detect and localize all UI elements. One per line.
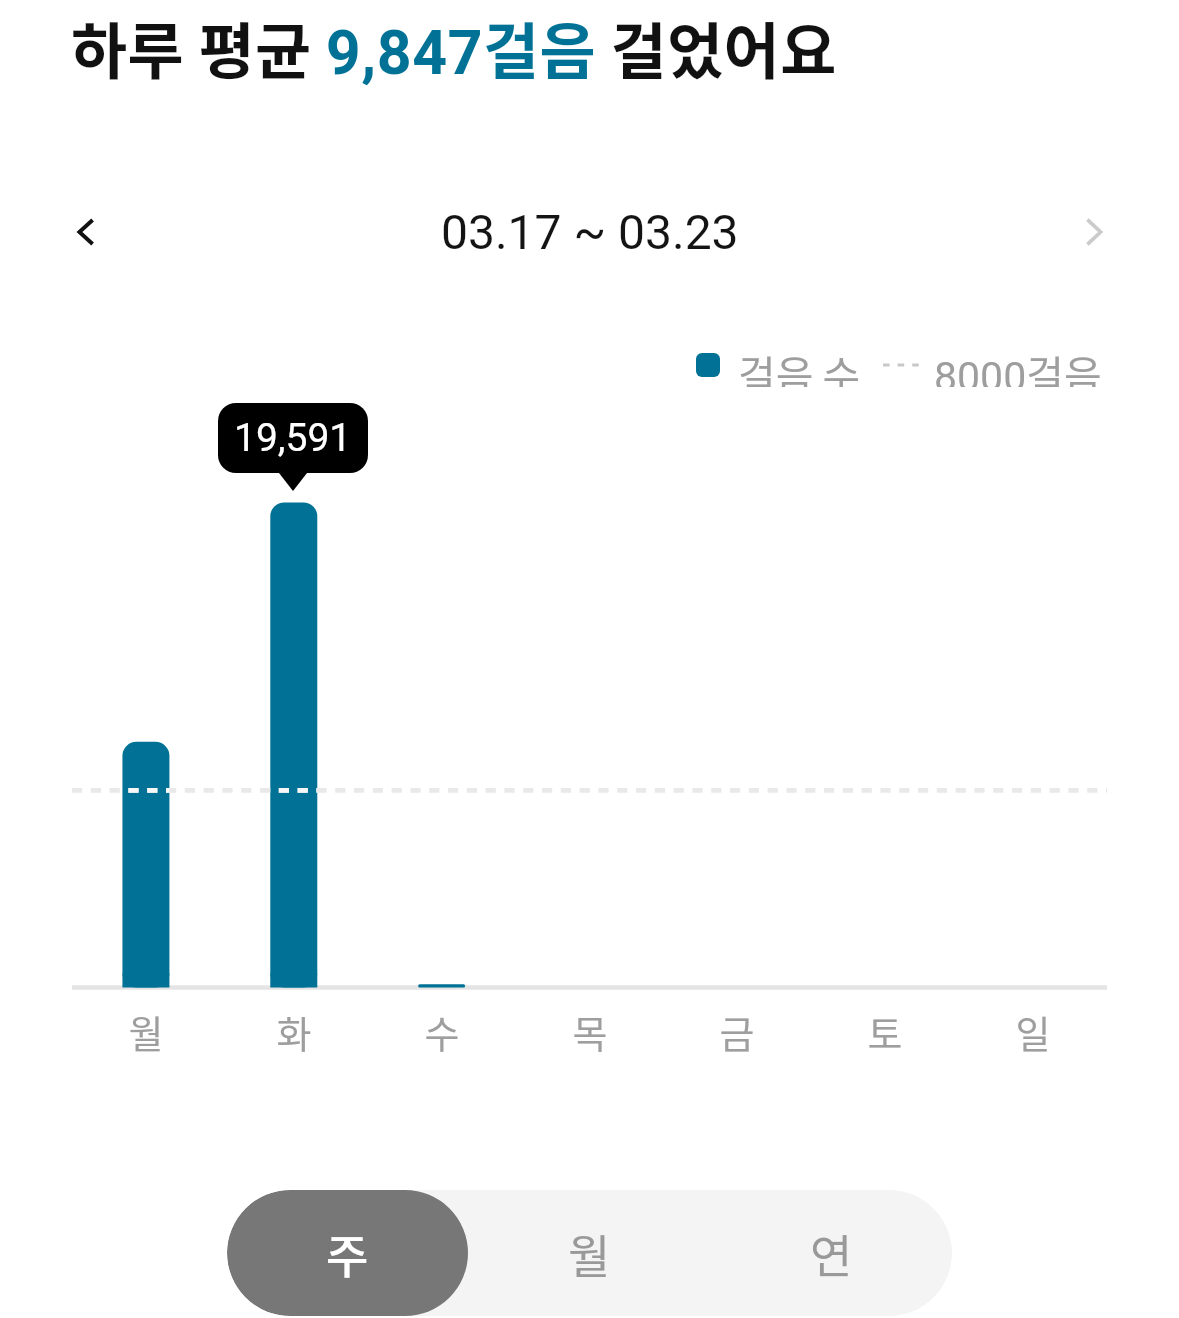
- staticText: 토: [840, 1004, 930, 1059]
- staticText: 화: [249, 1004, 339, 1059]
- staticText: 하루 평균 9,847걸음 걸었어요: [71, 3, 837, 91]
- button[interactable]: Previous week: [51, 197, 121, 267]
- staticText: 일: [988, 1004, 1078, 1059]
- staticText: 걸음 수: [738, 343, 861, 387]
- staticText: 19,591: [234, 415, 352, 461]
- staticText: 8000걸음: [934, 343, 1102, 387]
- staticText: 월: [568, 1220, 611, 1287]
- staticText: 주: [326, 1220, 369, 1287]
- button[interactable]: 월: [468, 1190, 710, 1316]
- staticText: 목: [545, 1004, 635, 1059]
- staticText: 수: [397, 1004, 487, 1059]
- staticText: 연: [810, 1220, 853, 1287]
- staticText: 금: [692, 1004, 782, 1059]
- staticText: 03.17 ~ 03.23: [441, 204, 739, 260]
- button[interactable]: 주: [227, 1190, 468, 1316]
- button[interactable]: Next week: [1059, 197, 1129, 267]
- staticText: 월: [101, 1004, 191, 1059]
- button[interactable]: 연: [710, 1190, 952, 1316]
